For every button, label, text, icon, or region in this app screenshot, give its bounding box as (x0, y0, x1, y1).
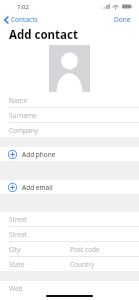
staticText: Add phone (22, 150, 56, 159)
staticText: City (9, 245, 70, 254)
staticText: Web (9, 284, 23, 293)
button[interactable]: Street (0, 212, 139, 227)
button[interactable]: Web (0, 281, 139, 295)
button[interactable]: Company (0, 123, 139, 137)
staticText: Add contact (9, 27, 78, 43)
staticText: Surname (9, 111, 37, 120)
staticText: Post code (70, 245, 139, 254)
button[interactable]: Done (106, 13, 139, 26)
staticText: Done (114, 15, 131, 24)
staticText: State (9, 260, 70, 269)
staticText: Country (70, 260, 139, 269)
button[interactable]: Add phone (0, 147, 139, 161)
button[interactable]: Street (0, 227, 139, 242)
button[interactable]: Contacts (0, 13, 44, 26)
button[interactable]: Add photo (49, 45, 90, 92)
staticText: Street (9, 215, 28, 224)
staticText: Street (9, 230, 28, 239)
staticText: 7:02 (17, 3, 29, 11)
button[interactable]: City (0, 242, 139, 257)
button[interactable]: Name (0, 93, 139, 108)
staticText: Add email (22, 183, 53, 192)
button[interactable]: Add email (0, 180, 139, 194)
staticText: Name (9, 96, 28, 105)
button[interactable]: Surname (0, 108, 139, 123)
staticText: Company (9, 126, 39, 135)
staticText: Contacts (11, 15, 38, 24)
button[interactable]: State (0, 257, 139, 271)
